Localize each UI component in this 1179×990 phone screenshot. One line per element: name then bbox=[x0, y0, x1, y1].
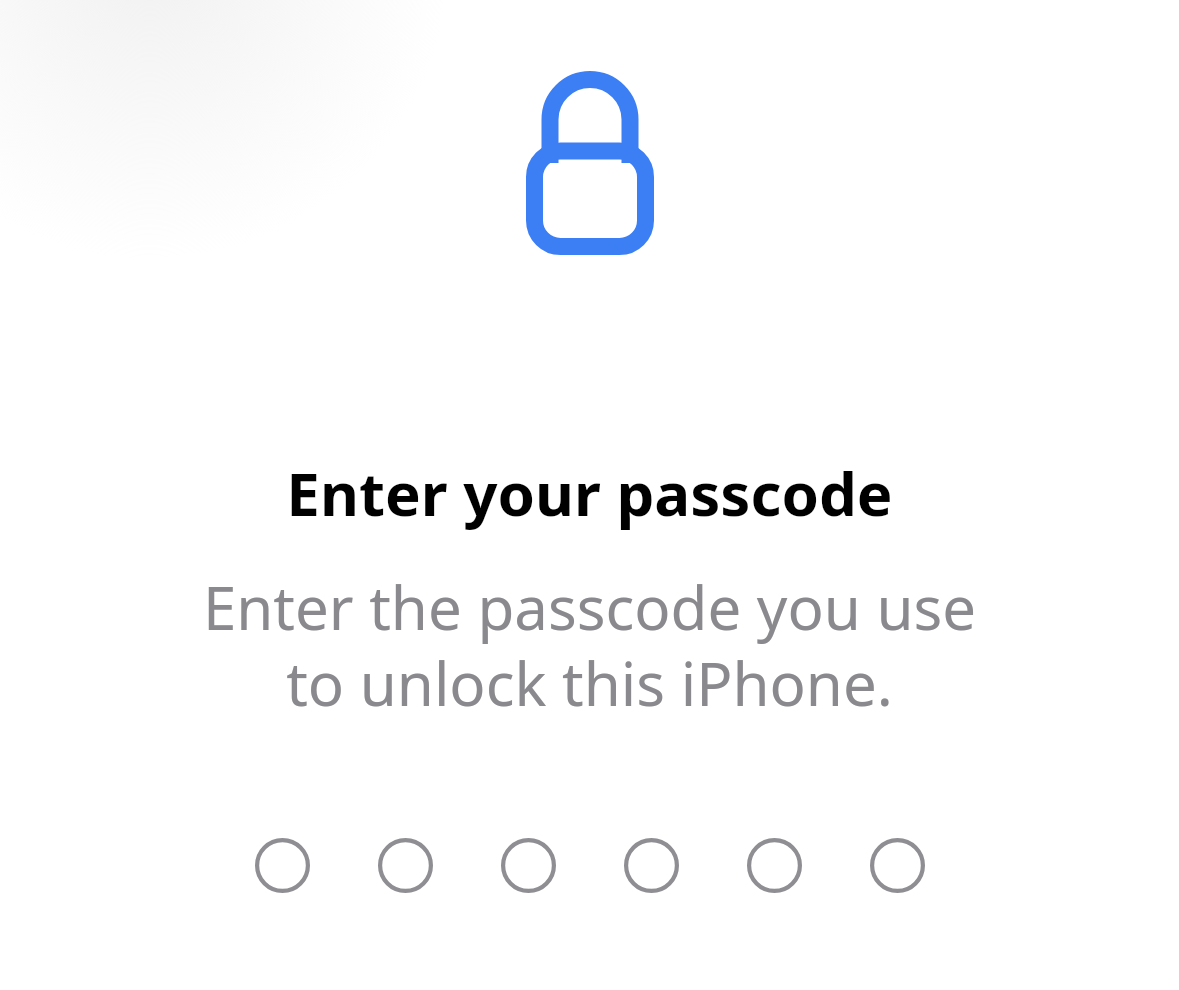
staticText: Enter the passcode you use to unlock thi… bbox=[170, 566, 1009, 723]
button[interactable]: Passcode digit 1 bbox=[255, 838, 310, 893]
button[interactable]: Passcode digit 5 bbox=[747, 838, 802, 893]
button[interactable]: Passcode digit 2 bbox=[378, 838, 433, 893]
button[interactable]: Passcode digit 4 bbox=[624, 838, 679, 893]
other: Locked bbox=[526, 71, 654, 255]
staticText: Enter your passcode bbox=[286, 452, 893, 534]
button[interactable]: Passcode digit 6 bbox=[870, 838, 925, 893]
button[interactable]: Passcode digit 3 bbox=[501, 838, 556, 893]
